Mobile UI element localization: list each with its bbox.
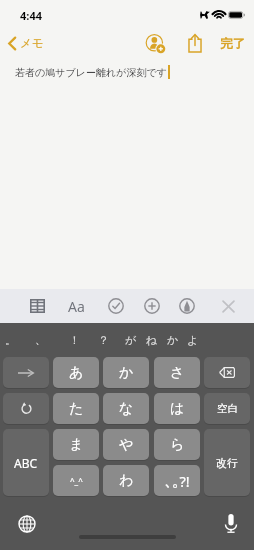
button[interactable]: が [122, 328, 140, 352]
staticText: 、 [35, 333, 46, 347]
button[interactable]: 完了 [217, 33, 248, 55]
button[interactable]: Add people [143, 31, 167, 55]
staticText: わ [119, 472, 134, 490]
staticText: は [170, 400, 185, 418]
button[interactable]: ね [143, 328, 161, 352]
staticText: さ [170, 364, 185, 382]
button[interactable]: Table [26, 289, 48, 323]
button[interactable]: ！ [65, 328, 83, 352]
button[interactable]: 空白 [204, 393, 250, 424]
button[interactable]: さ [154, 357, 200, 388]
button[interactable]: Share [183, 31, 207, 55]
staticText: 若者の鳩サブレー離れが深刻です [15, 66, 167, 79]
staticText: Aa [68, 297, 85, 316]
staticText: 空白 [217, 402, 238, 415]
button[interactable]: Checklist [105, 289, 127, 323]
button[interactable]: 改行 [204, 429, 250, 496]
button[interactable]: 、 [31, 328, 49, 352]
button[interactable]: ま [53, 429, 99, 460]
button[interactable]: ？ [94, 328, 112, 352]
button[interactable]: Aa [66, 289, 87, 323]
button[interactable]: よ [184, 328, 202, 352]
button[interactable]: な [103, 393, 149, 424]
button[interactable]: Next candidate [3, 357, 49, 388]
staticText: ね [146, 333, 158, 347]
button[interactable]: Switch keyboard [17, 514, 36, 533]
staticText: た [69, 400, 84, 418]
button[interactable]: わ [103, 465, 149, 496]
button[interactable]: Delete [204, 357, 250, 388]
staticText: ^_^ [70, 475, 83, 486]
staticText: あ [69, 364, 84, 382]
button[interactable]: ら [154, 429, 200, 460]
button[interactable]: か [103, 357, 149, 388]
button[interactable]: た [53, 393, 99, 424]
button[interactable]: Add attachment [141, 289, 163, 323]
staticText: ま [69, 436, 84, 454]
button[interactable]: は [154, 393, 200, 424]
button[interactable]: や [103, 429, 149, 460]
staticText: が [125, 333, 137, 347]
staticText: な [119, 400, 134, 418]
button[interactable]: Dictation [222, 513, 240, 533]
staticText: 。 [5, 333, 16, 347]
button[interactable]: Markup [176, 289, 198, 323]
button[interactable]: あ [53, 357, 99, 388]
staticText: か [167, 333, 179, 347]
staticText: メモ [20, 36, 44, 50]
button[interactable]: Close [217, 289, 239, 323]
button[interactable]: ^_^ [53, 465, 99, 496]
button[interactable]: 。 [1, 328, 19, 352]
button[interactable]: ､｡?! [154, 465, 200, 496]
staticText: よ [187, 333, 199, 347]
staticText: ABC [14, 455, 38, 471]
button[interactable]: ABC [3, 429, 49, 496]
button[interactable]: か [164, 328, 182, 352]
button[interactable]: Undo [3, 393, 49, 424]
staticText: か [119, 364, 134, 382]
staticText: ら [170, 436, 185, 454]
staticText: ､｡?! [165, 471, 190, 491]
staticText: ？ [98, 333, 109, 347]
staticText: ！ [69, 333, 80, 347]
staticText: 4:44 [20, 8, 42, 23]
staticText: 完了 [220, 36, 245, 52]
button[interactable]: メモ [5, 33, 50, 53]
staticText: 改行 [216, 456, 238, 470]
staticText: や [119, 436, 134, 454]
